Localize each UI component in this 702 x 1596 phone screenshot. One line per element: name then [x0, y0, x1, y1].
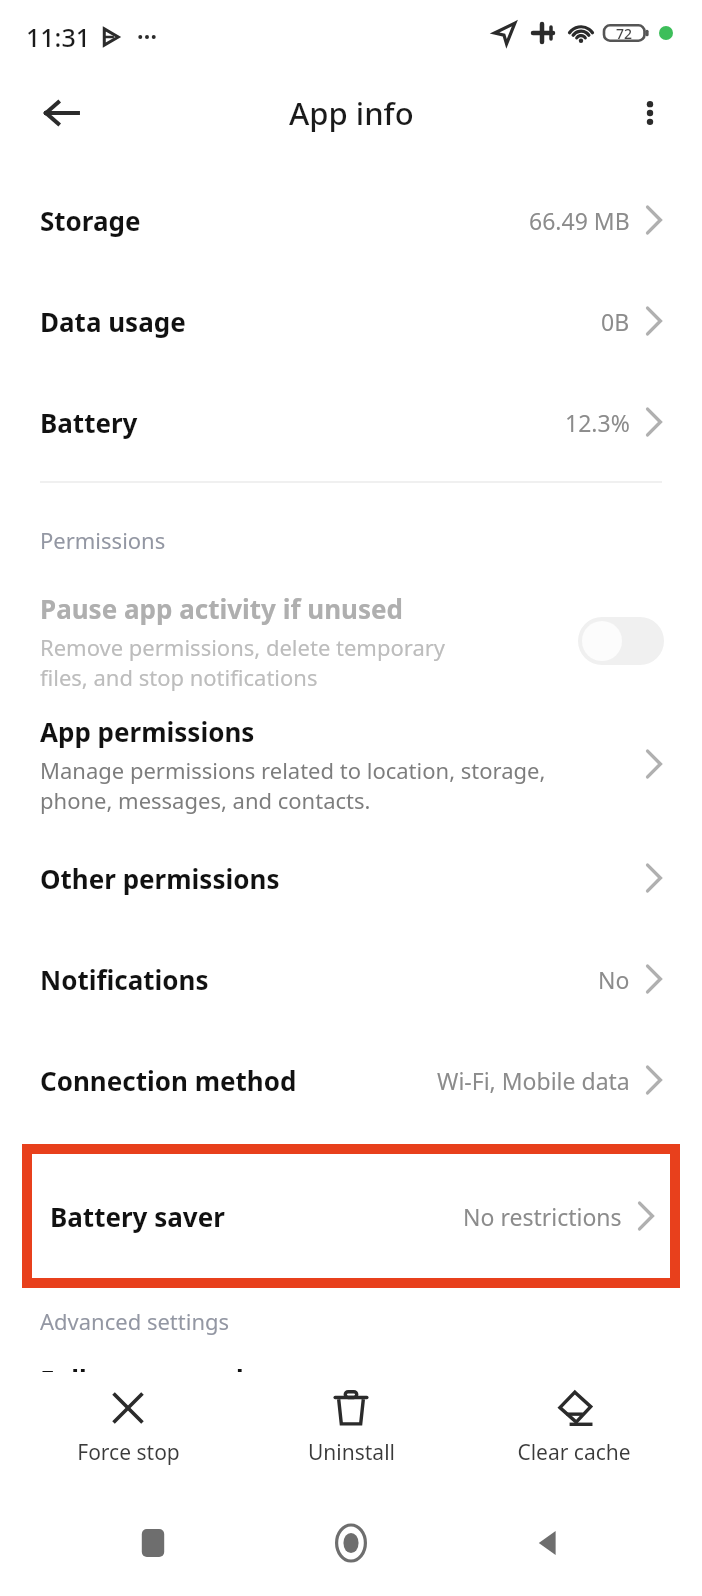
button[interactable]: More options: [614, 77, 686, 149]
staticText: Other permissions: [40, 861, 280, 896]
button[interactable]: Pause app activity if unused: [0, 578, 702, 704]
staticText: No: [598, 964, 630, 995]
staticText: Force stop: [77, 1438, 180, 1467]
button[interactable]: Notifications: [0, 932, 702, 1026]
staticText: 0B: [601, 306, 630, 337]
staticText: Permissions: [40, 525, 166, 555]
staticText: Remove permissions, delete temporary fil…: [40, 632, 446, 692]
staticText: Storage: [40, 203, 141, 238]
button[interactable]: Home: [306, 1498, 396, 1588]
staticText: Manage permissions related to location, …: [40, 755, 546, 815]
staticText: App permissions: [40, 714, 255, 749]
button[interactable]: Battery saver: [32, 1154, 670, 1278]
button[interactable]: Data usage: [0, 271, 702, 371]
staticText: Notifications: [40, 962, 209, 997]
button[interactable]: Other permissions: [0, 832, 702, 924]
staticText: Data usage: [40, 304, 186, 339]
staticText: Pause app activity if unused: [40, 591, 404, 626]
staticText: Battery: [40, 405, 138, 440]
staticText: Wi-Fi, Mobile data: [437, 1065, 630, 1096]
button[interactable]: App permissions: [0, 705, 702, 823]
staticText: Uninstall: [308, 1438, 395, 1467]
button[interactable]: Back: [504, 1498, 594, 1588]
staticText: Battery saver: [50, 1199, 225, 1234]
button[interactable]: Battery: [0, 372, 702, 472]
staticText: No restrictions: [463, 1201, 622, 1232]
staticText: Clear cache: [517, 1438, 631, 1467]
staticText: 66.49 MB: [529, 205, 630, 236]
button[interactable]: Pause app activity toggle: [578, 617, 664, 665]
button[interactable]: Back: [22, 73, 102, 153]
button[interactable]: Connection method: [0, 1033, 702, 1127]
staticText: Full screen mode: [40, 1362, 260, 1380]
staticText: 12.3%: [565, 407, 630, 438]
button[interactable]: Recents: [108, 1498, 198, 1588]
staticText: App info: [289, 92, 414, 134]
staticText: 11:31: [26, 20, 91, 54]
staticText: 72: [616, 24, 633, 43]
button[interactable]: Clear cache: [479, 1372, 669, 1480]
button[interactable]: Storage: [0, 170, 702, 270]
button[interactable]: Force stop: [33, 1372, 223, 1480]
button[interactable]: Uninstall: [256, 1372, 446, 1480]
staticText: Advanced settings: [40, 1306, 230, 1336]
staticText: Connection method: [40, 1063, 297, 1098]
